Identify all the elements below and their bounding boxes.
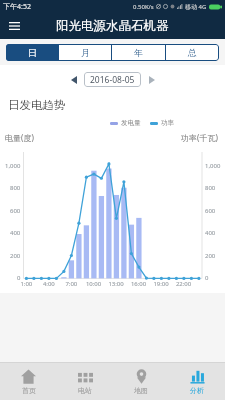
button[interactable]: 电站 [57, 363, 113, 400]
staticText: 下午4:52 [3, 2, 31, 12]
staticText: 月 [81, 47, 90, 58]
staticText: 阳光电源水晶石机器 [56, 18, 169, 34]
button[interactable]: 日 [6, 44, 58, 61]
staticText: 分析 [190, 386, 204, 395]
button[interactable]: 月 [59, 44, 111, 61]
button[interactable]: Previous day [66, 72, 81, 87]
staticText: 年 [134, 47, 143, 58]
staticText: 2016-08-05 [90, 74, 135, 86]
staticText: 移动 4G [185, 3, 207, 11]
staticText: 电量(度) [5, 132, 34, 143]
staticText: 0.50K/s [133, 3, 154, 11]
button[interactable]: 总 [166, 44, 219, 61]
staticText: 地图 [134, 386, 148, 395]
staticText: 日发电趋势 [8, 98, 66, 112]
staticText: 电站 [78, 386, 92, 395]
button[interactable]: 年 [112, 44, 165, 61]
button[interactable]: 首页 [0, 363, 57, 400]
button[interactable]: 2016-08-05 [84, 72, 141, 87]
button[interactable]: Next day [144, 72, 159, 87]
staticText: 功率 [161, 119, 174, 127]
staticText: 发电量 [121, 119, 141, 127]
staticText: 功率(千瓦) [181, 132, 218, 143]
staticText: 总 [188, 47, 197, 58]
staticText: 日 [28, 47, 37, 58]
button[interactable]: Menu [4, 16, 24, 36]
button[interactable]: 分析 [169, 363, 225, 400]
staticText: 首页 [22, 386, 36, 395]
button[interactable]: 地图 [113, 363, 169, 400]
